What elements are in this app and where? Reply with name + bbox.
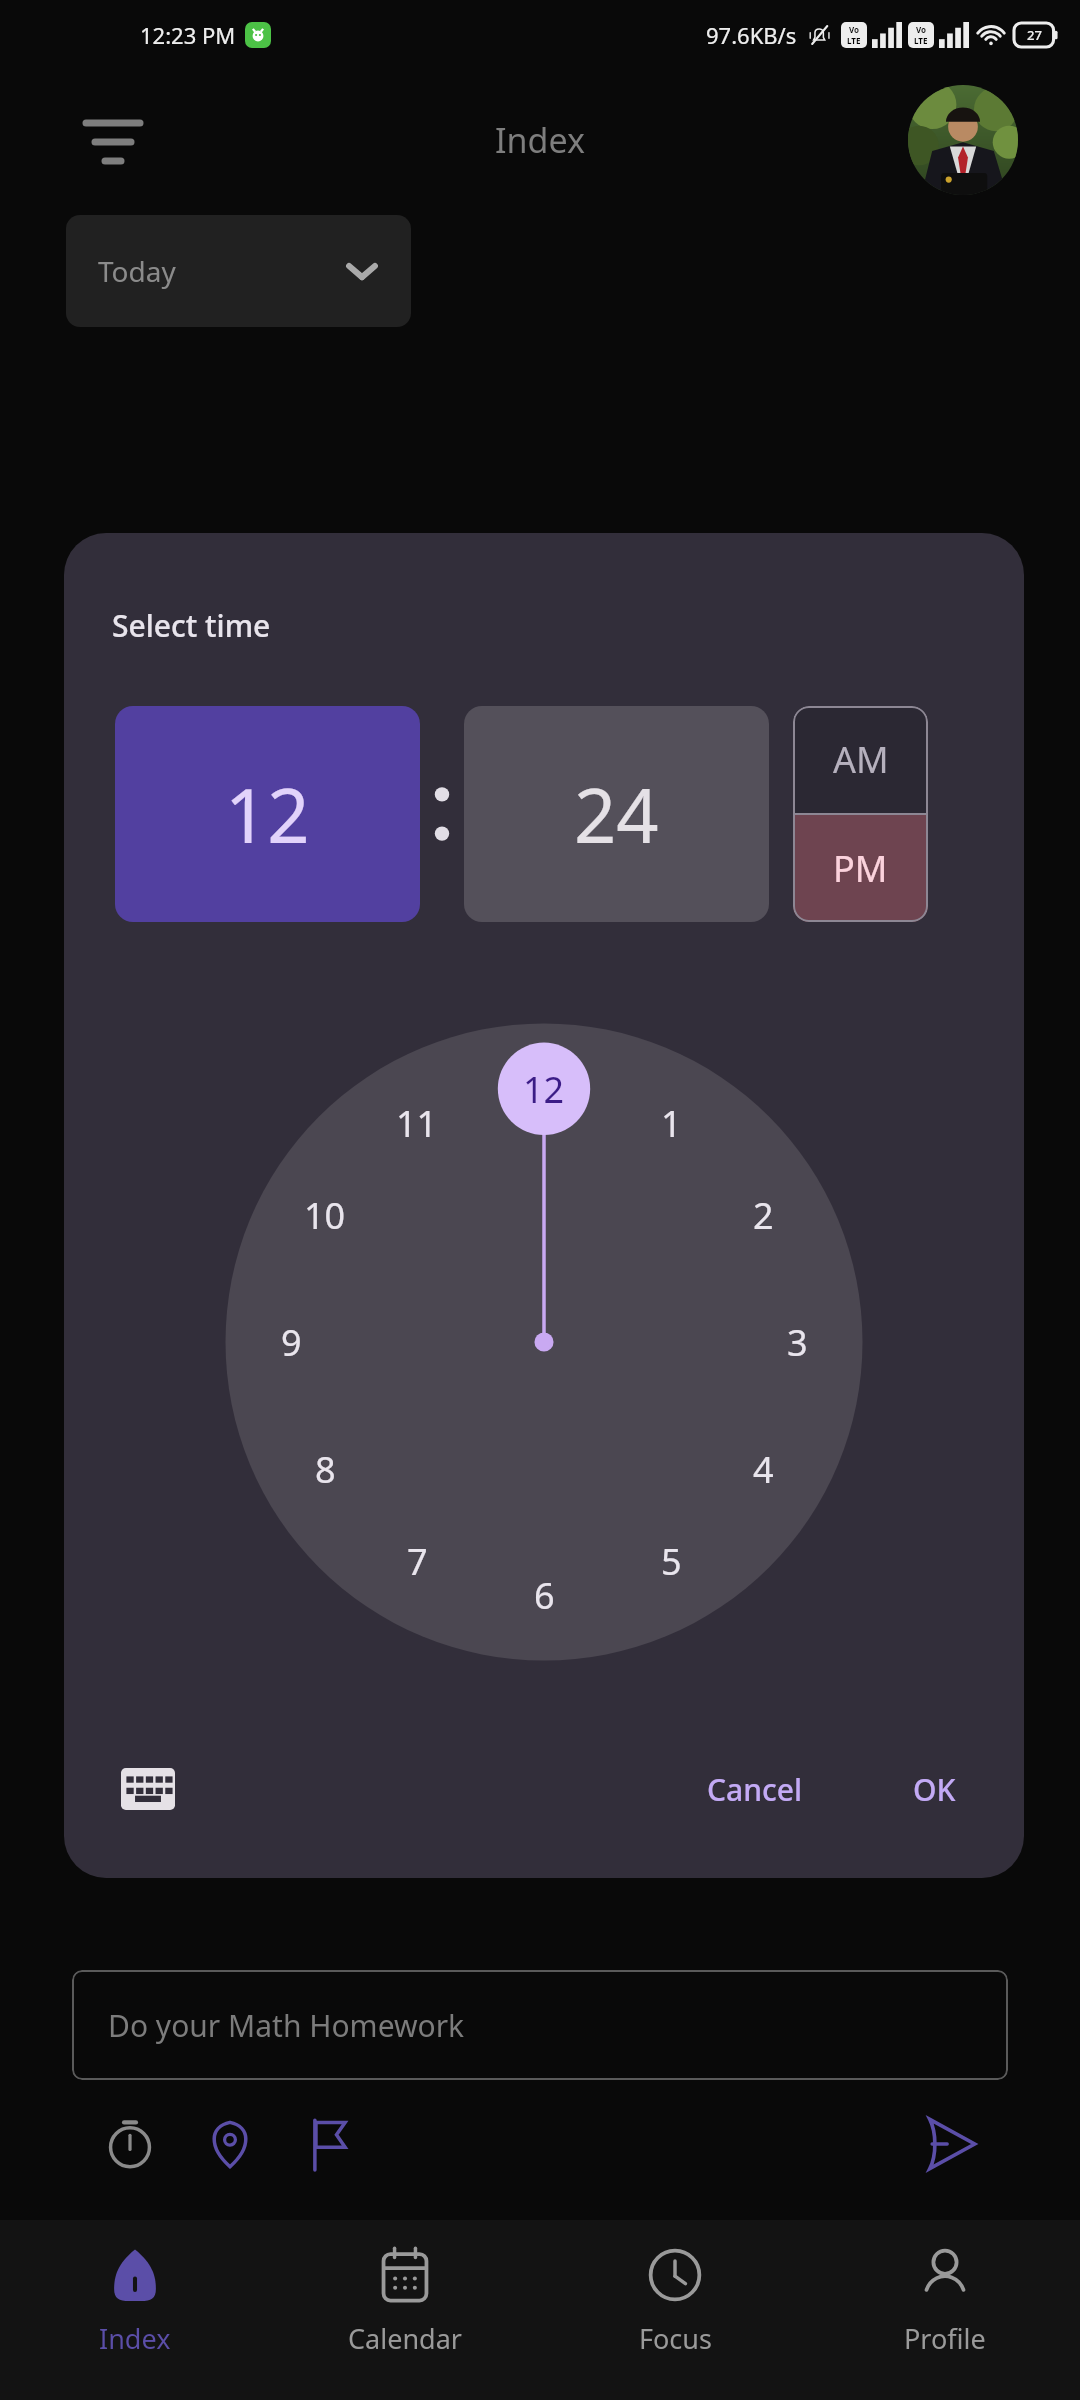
staticText: 97.6KB/s — [706, 20, 797, 50]
button[interactable]: 5 — [623, 1513, 719, 1609]
button[interactable]: Switch to keyboard input — [108, 1749, 188, 1829]
staticText: 7 — [407, 1537, 428, 1586]
button[interactable]: 7 — [369, 1513, 465, 1609]
button[interactable]: Flag priority — [292, 2106, 368, 2182]
button[interactable]: PM — [793, 815, 928, 922]
staticText: 24 — [574, 764, 659, 865]
staticText: 4 — [753, 1445, 774, 1494]
staticText: Vo — [849, 24, 860, 35]
button[interactable]: Profile picture — [908, 85, 1018, 195]
button[interactable]: 3 — [749, 1294, 845, 1390]
button[interactable]: 1 — [623, 1075, 719, 1171]
button[interactable]: 8 — [277, 1421, 373, 1517]
staticText: 8 — [315, 1445, 336, 1494]
staticText: Index — [99, 2320, 171, 2357]
staticText: Today — [98, 252, 176, 290]
button[interactable]: 10 — [277, 1167, 373, 1263]
staticText: 12 — [225, 764, 310, 865]
button[interactable]: OK — [893, 1755, 976, 1824]
staticText: 6 — [534, 1571, 555, 1620]
staticText: LTE — [847, 35, 861, 46]
button[interactable]: Index — [0, 2220, 270, 2400]
button[interactable]: 11 — [369, 1075, 465, 1171]
staticText: Calendar — [348, 2320, 462, 2357]
button[interactable]: 12 — [496, 1041, 592, 1137]
staticText: Profile — [904, 2320, 986, 2357]
staticText: Cancel — [707, 1769, 803, 1810]
staticText: 11 — [396, 1099, 438, 1148]
button[interactable]: Focus — [540, 2220, 810, 2400]
staticText: Index — [495, 117, 585, 163]
button[interactable]: 6 — [496, 1547, 592, 1643]
button[interactable]: 9 — [243, 1294, 339, 1390]
staticText: 12 — [523, 1065, 565, 1114]
button[interactable]: Send — [912, 2106, 988, 2182]
button[interactable]: Set reminder — [92, 2106, 168, 2182]
staticText: 5 — [661, 1537, 682, 1586]
staticText: 1 — [661, 1099, 682, 1148]
button[interactable]: 12 — [115, 706, 420, 922]
button[interactable]: Calendar — [270, 2220, 540, 2400]
button[interactable]: Cancel — [687, 1755, 823, 1824]
staticText: 2 — [753, 1191, 774, 1240]
staticText: PM — [833, 844, 888, 893]
staticText: Focus — [639, 2320, 712, 2357]
staticText: Vo — [916, 24, 927, 35]
staticText: AM — [833, 735, 889, 784]
staticText: 3 — [787, 1318, 808, 1367]
button[interactable]: 2 — [715, 1167, 811, 1263]
button[interactable]: Today — [66, 215, 411, 327]
staticText: LTE — [914, 35, 928, 46]
staticText: Do your Math Homework — [108, 2005, 465, 2046]
button[interactable]: Do your Math Homework — [72, 1970, 1008, 2080]
staticText: Select time — [112, 605, 271, 646]
staticText: OK — [913, 1769, 956, 1810]
button[interactable]: Tag — [192, 2106, 268, 2182]
button[interactable]: 4 — [715, 1421, 811, 1517]
staticText: 10 — [304, 1191, 346, 1240]
button[interactable]: 24 — [464, 706, 769, 922]
staticText: 27 — [1027, 26, 1042, 44]
button[interactable]: Profile — [810, 2220, 1080, 2400]
staticText: 9 — [281, 1318, 302, 1367]
button[interactable]: AM — [793, 706, 928, 813]
staticText: 12:23 PM — [140, 20, 236, 50]
button[interactable]: Menu — [80, 107, 146, 173]
